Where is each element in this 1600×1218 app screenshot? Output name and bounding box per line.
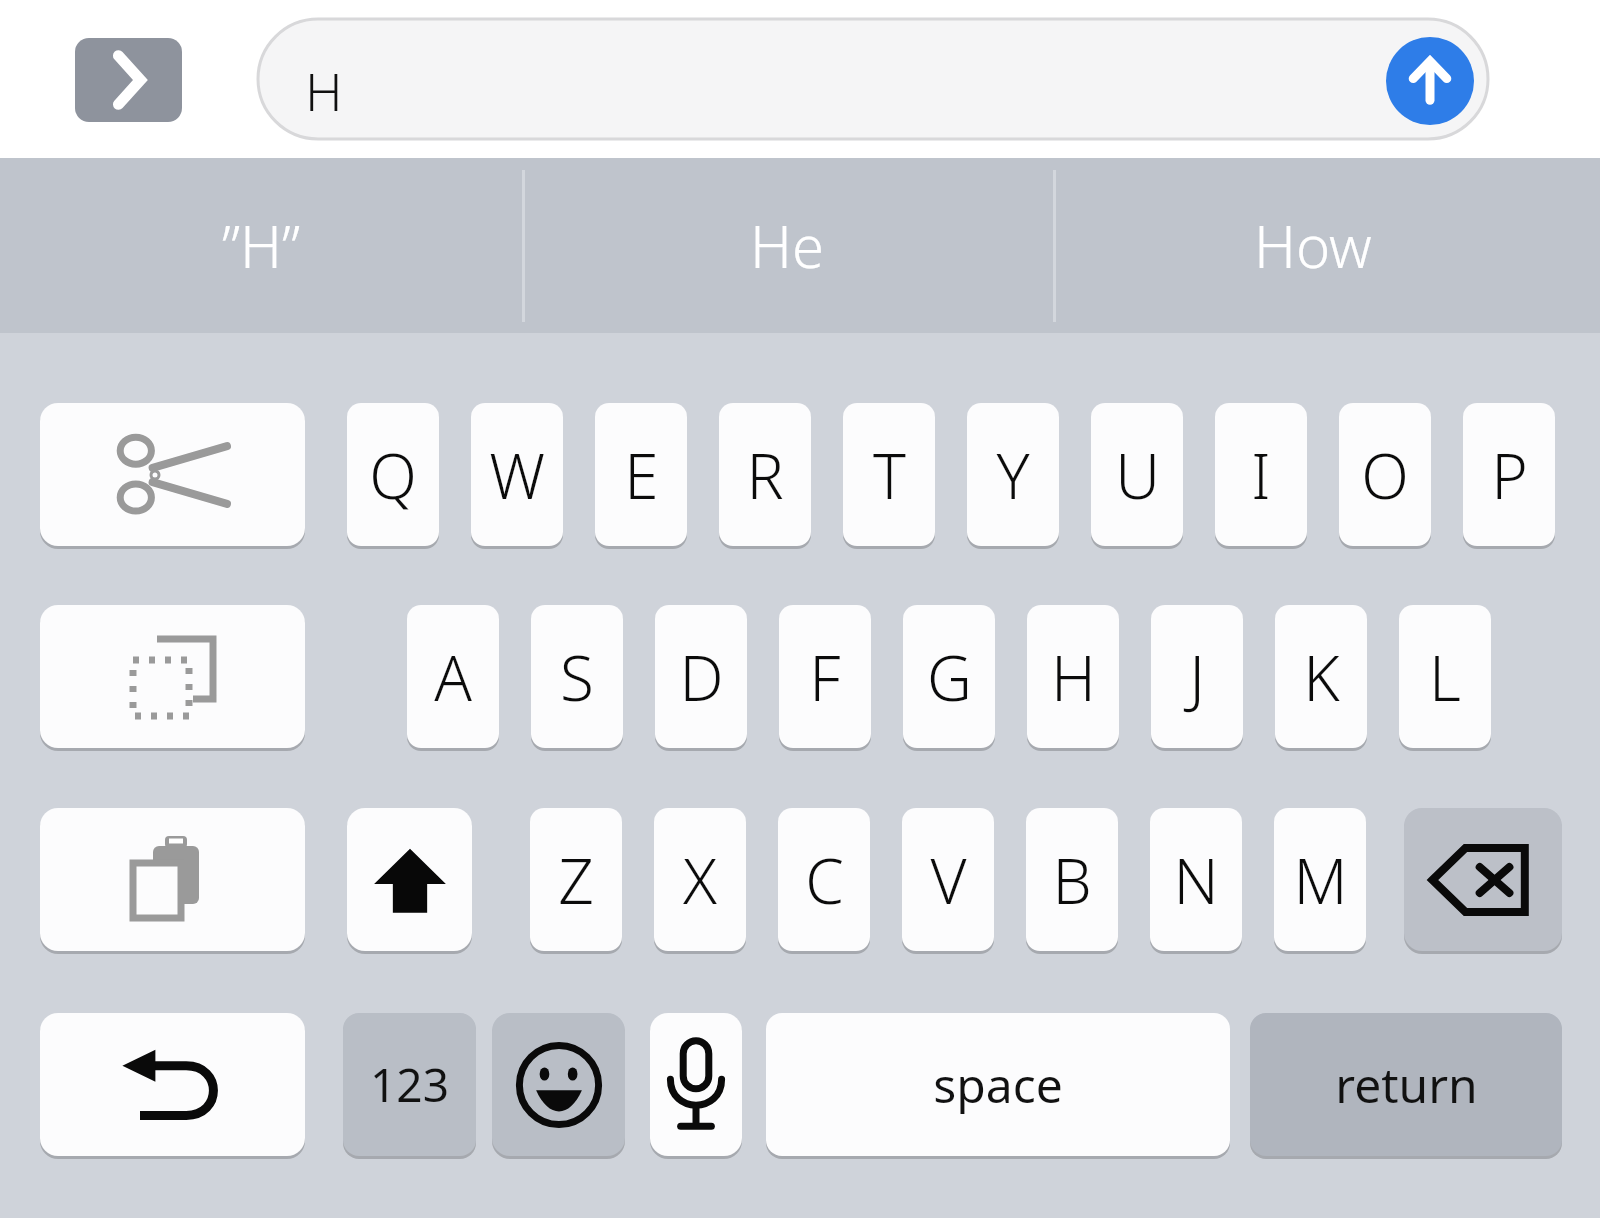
button[interactable]: Backspace (1404, 808, 1562, 951)
button[interactable]: return (1250, 1013, 1562, 1156)
button[interactable]: Emoji (492, 1013, 625, 1156)
staticText: Q (369, 433, 417, 517)
button[interactable]: He (547, 158, 1027, 333)
staticText: P (1491, 433, 1528, 517)
staticText: L (1429, 635, 1461, 719)
button[interactable]: V (902, 808, 994, 951)
button[interactable]: space (766, 1013, 1230, 1156)
button[interactable]: K (1275, 605, 1367, 748)
button[interactable]: S (531, 605, 623, 748)
button[interactable]: H (1027, 605, 1119, 748)
button[interactable]: E (595, 403, 687, 546)
staticText: H (305, 55, 343, 126)
button[interactable]: J (1151, 605, 1243, 748)
button[interactable]: I (1215, 403, 1307, 546)
staticText: I (1251, 433, 1271, 517)
staticText: M (1293, 838, 1348, 922)
staticText: T (873, 433, 906, 517)
staticText: G (927, 635, 972, 719)
button[interactable]: W (471, 403, 563, 546)
staticText: X (683, 838, 717, 922)
staticText: F (809, 635, 841, 719)
button[interactable]: Dictate (650, 1013, 742, 1156)
button[interactable]: D (655, 605, 747, 748)
staticText: N (1173, 838, 1219, 922)
staticText: S (560, 635, 594, 719)
button[interactable]: F (779, 605, 871, 748)
button[interactable]: O (1339, 403, 1431, 546)
staticText: B (1052, 838, 1092, 922)
button[interactable]: N (1150, 808, 1242, 951)
button[interactable] (258, 19, 1488, 139)
button[interactable]: Q (347, 403, 439, 546)
button[interactable]: P (1463, 403, 1555, 546)
button[interactable]: T (843, 403, 935, 546)
button[interactable]: Send (1386, 37, 1474, 125)
staticText: R (746, 433, 784, 517)
staticText: space (933, 1052, 1063, 1117)
button[interactable]: Undo (40, 1013, 305, 1156)
button[interactable]: Paste (40, 808, 305, 951)
button[interactable]: A (407, 605, 499, 748)
staticText: Z (558, 838, 594, 922)
staticText: ”H” (222, 206, 301, 285)
staticText: return (1335, 1052, 1478, 1117)
button[interactable]: C (778, 808, 870, 951)
button[interactable]: L (1399, 605, 1491, 748)
button[interactable]: R (719, 403, 811, 546)
button[interactable]: Shift (347, 808, 472, 951)
staticText: C (805, 838, 844, 922)
staticText: V (930, 838, 967, 922)
button[interactable]: B (1026, 808, 1118, 951)
staticText: D (679, 635, 724, 719)
button[interactable]: Copy (40, 605, 305, 748)
button[interactable]: Cut (40, 403, 305, 546)
staticText: W (489, 433, 545, 517)
staticText: How (1254, 206, 1372, 285)
button[interactable]: G (903, 605, 995, 748)
staticText: J (1189, 635, 1205, 719)
staticText: Y (996, 433, 1030, 517)
staticText: H (1051, 635, 1096, 719)
button[interactable]: Next field (75, 38, 182, 122)
button[interactable]: Y (967, 403, 1059, 546)
button[interactable]: Z (530, 808, 622, 951)
button[interactable]: X (654, 808, 746, 951)
button[interactable]: How (1073, 158, 1553, 333)
button[interactable]: M (1274, 808, 1366, 951)
staticText: He (750, 206, 824, 285)
staticText: K (1303, 635, 1340, 719)
button[interactable]: 123 (343, 1013, 476, 1156)
staticText: E (624, 433, 659, 517)
staticText: 123 (370, 1053, 449, 1116)
button[interactable]: ”H” (21, 158, 501, 333)
staticText: O (1361, 433, 1409, 517)
staticText: U (1115, 433, 1160, 517)
staticText: A (434, 635, 472, 719)
button[interactable]: U (1091, 403, 1183, 546)
